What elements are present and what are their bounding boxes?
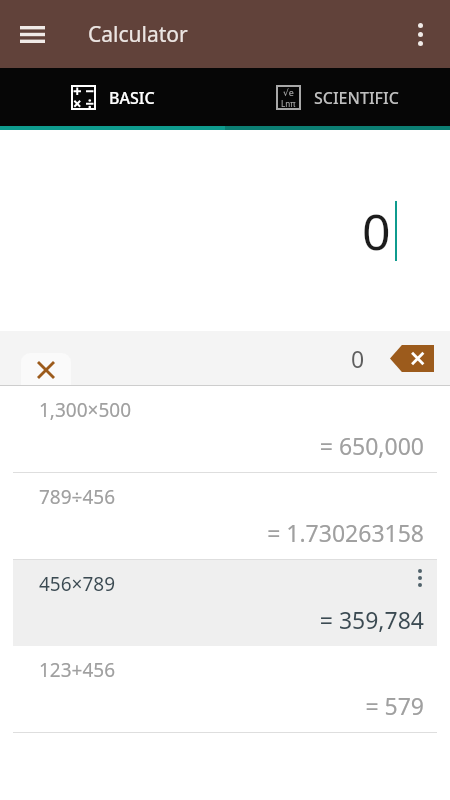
staticText: Calculator — [88, 20, 188, 49]
staticText: 0 — [351, 343, 365, 374]
button[interactable]: Clear history — [21, 353, 71, 386]
button[interactable]: 1,300×500 — [0, 386, 450, 472]
button[interactable]: Backspace — [390, 345, 434, 372]
staticText: = 359,784 — [39, 604, 424, 635]
staticText: 123+456 — [39, 657, 116, 683]
staticText: 0 — [362, 197, 391, 265]
staticText: SCIENTIFIC — [314, 87, 399, 109]
staticText: 789÷456 — [39, 484, 116, 510]
staticText: = 650,000 — [39, 430, 424, 461]
staticText: BASIC — [109, 87, 155, 109]
staticText: Lnπ — [281, 98, 296, 109]
staticText: √e — [283, 86, 294, 98]
staticText: = 579 — [39, 690, 424, 721]
button[interactable]: 456×789 — [13, 560, 437, 646]
button[interactable]: 123+456 — [0, 646, 450, 732]
button[interactable]: BASIC — [0, 68, 225, 126]
staticText: = 1.730263158 — [39, 517, 424, 548]
button[interactable]: Navigation drawer — [6, 8, 58, 60]
button[interactable]: √e — [225, 68, 450, 126]
button[interactable]: History item menu — [405, 563, 435, 593]
staticText: 1,300×500 — [39, 397, 132, 423]
button[interactable]: More options — [396, 10, 444, 58]
button[interactable]: 789÷456 — [0, 473, 450, 559]
staticText: 456×789 — [39, 571, 116, 597]
